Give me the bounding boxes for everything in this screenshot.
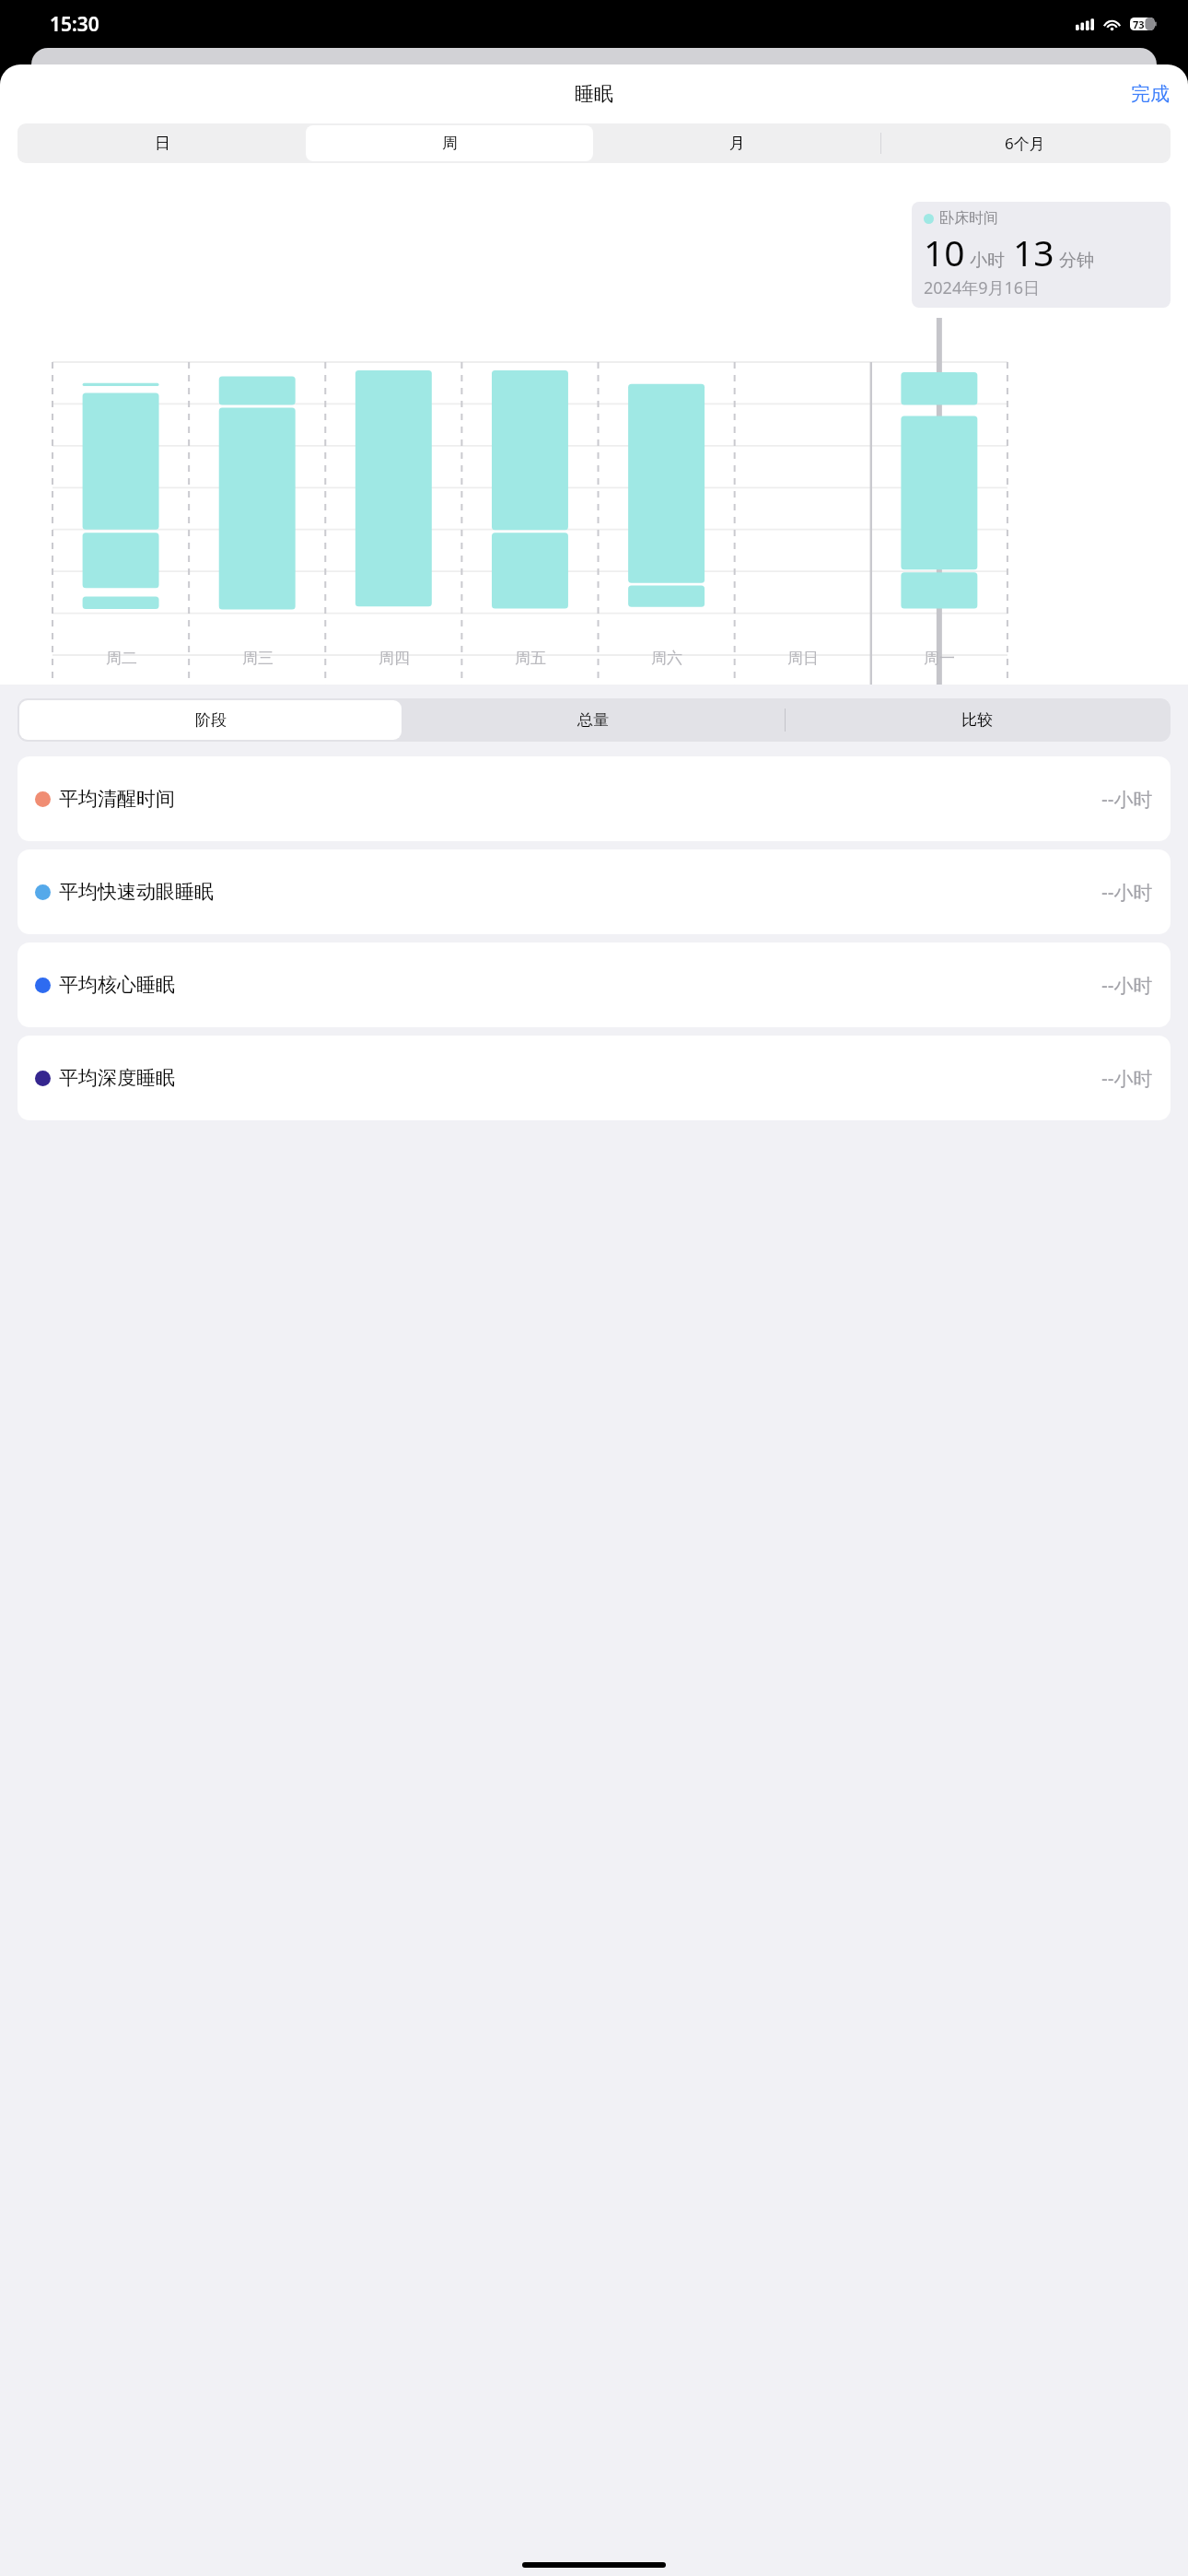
staticText: 平均核心睡眠 — [59, 973, 175, 997]
staticText: 13 — [1013, 228, 1054, 276]
button[interactable]: 平均核心睡眠 — [17, 943, 1171, 1027]
staticText: 分钟 — [1059, 250, 1094, 272]
button[interactable]: 完成 — [1112, 73, 1188, 115]
staticText: 平均清醒时间 — [59, 787, 175, 811]
staticText: 6个月 — [1005, 133, 1045, 154]
button[interactable]: 比较 — [786, 700, 1169, 740]
button[interactable]: 阶段 — [19, 700, 402, 740]
staticText: 睡眠 — [575, 82, 613, 106]
staticText: 月 — [729, 134, 745, 153]
staticText: 日 — [155, 134, 170, 153]
staticText: 2024年9月16日 — [924, 276, 1041, 299]
button[interactable]: 平均快速动眼睡眠 — [17, 849, 1171, 934]
staticText: 周四 — [379, 649, 410, 668]
button[interactable]: 日 — [19, 125, 306, 161]
staticText: 周日 — [787, 649, 819, 668]
staticText: 周六 — [651, 649, 682, 668]
button[interactable]: 平均清醒时间 — [17, 756, 1171, 841]
staticText: 10 — [924, 228, 965, 276]
staticText: 73 — [1133, 18, 1145, 30]
staticText: 周二 — [106, 649, 137, 668]
button[interactable]: 周 — [306, 125, 593, 161]
staticText: 总量 — [577, 710, 609, 730]
staticText: 完成 — [1131, 82, 1170, 106]
staticText: --小时 — [1101, 1065, 1153, 1092]
staticText: 卧床时间 — [939, 209, 998, 228]
staticText: --小时 — [1101, 786, 1153, 813]
staticText: 周一 — [924, 649, 955, 668]
staticText: --小时 — [1101, 879, 1153, 906]
staticText: 周 — [442, 134, 458, 153]
staticText: 平均深度睡眠 — [59, 1066, 175, 1090]
staticText: 15:30 — [50, 11, 99, 38]
staticText: 平均快速动眼睡眠 — [59, 880, 214, 904]
button[interactable]: 月 — [593, 125, 880, 161]
staticText: --小时 — [1101, 972, 1153, 999]
button[interactable]: 总量 — [402, 700, 785, 740]
button[interactable]: 平均深度睡眠 — [17, 1036, 1171, 1120]
staticText: 小时 — [970, 250, 1005, 272]
button[interactable]: 6个月 — [881, 125, 1169, 161]
staticText: 周五 — [515, 649, 546, 668]
staticText: 周三 — [242, 649, 274, 668]
staticText: 比较 — [961, 710, 993, 730]
staticText: 阶段 — [195, 710, 227, 730]
